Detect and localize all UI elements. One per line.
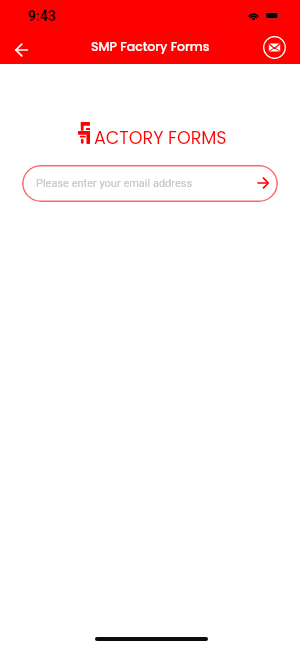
- button[interactable]: Mail: [262, 35, 287, 60]
- button[interactable]: Submit: [252, 172, 274, 194]
- staticText: ACTORY FORMS: [94, 126, 227, 151]
- staticText: SMP Factory Forms: [91, 38, 210, 55]
- button[interactable]: Please enter your email address: [22, 165, 278, 202]
- button[interactable]: Back: [7, 35, 36, 64]
- staticText: 9:43: [28, 8, 57, 24]
- staticText: Please enter your email address: [36, 177, 193, 190]
